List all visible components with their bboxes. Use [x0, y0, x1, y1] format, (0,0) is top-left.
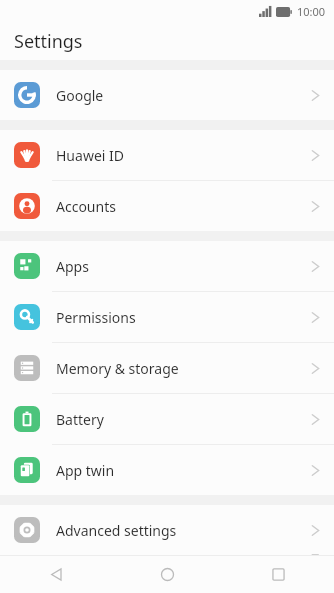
staticText: Settings	[14, 29, 83, 54]
button[interactable]: App twin	[0, 445, 334, 495]
button[interactable]: Apps	[0, 241, 334, 291]
staticText: Apps	[56, 257, 311, 276]
staticText: App twin	[56, 461, 311, 480]
staticText: Permissions	[56, 308, 311, 327]
staticText: Battery	[56, 410, 311, 429]
button[interactable]: Home	[112, 556, 223, 593]
staticText: Accounts	[56, 197, 311, 216]
button[interactable]: Recent apps	[223, 556, 334, 593]
button[interactable]: Back	[0, 556, 112, 593]
staticText: Memory & storage	[56, 359, 311, 378]
staticText: Advanced settings	[56, 521, 311, 540]
button[interactable]: Battery	[0, 394, 334, 444]
button[interactable]: Google	[0, 70, 334, 120]
button[interactable]: Accounts	[0, 181, 334, 231]
button[interactable]: Memory & storage	[0, 343, 334, 393]
staticText: Huawei ID	[56, 146, 311, 165]
button[interactable]: Advanced settings	[0, 505, 334, 555]
staticText: 10:00	[297, 4, 326, 19]
staticText: Google	[56, 86, 311, 105]
button[interactable]: Huawei ID	[0, 130, 334, 180]
button[interactable]: Permissions	[0, 292, 334, 342]
